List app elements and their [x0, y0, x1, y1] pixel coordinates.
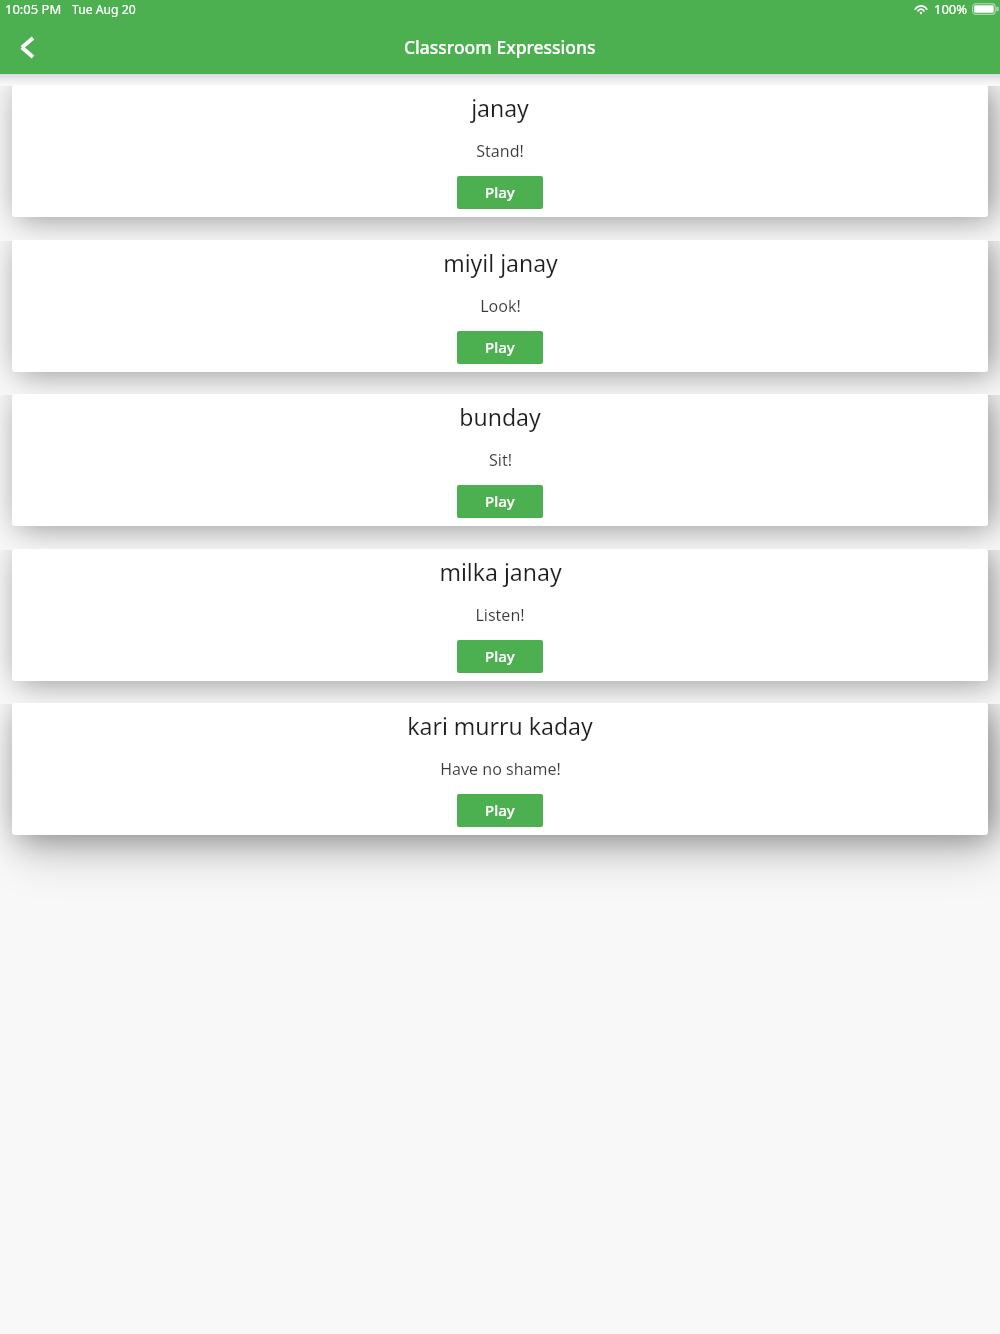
- staticText: Look!: [480, 295, 521, 317]
- button[interactable]: milka janay: [12, 549, 988, 681]
- staticText: Play: [485, 800, 515, 820]
- staticText: Play: [485, 646, 515, 666]
- button[interactable]: janay: [12, 85, 988, 217]
- staticText: bunday: [459, 401, 541, 432]
- button[interactable]: kari murru kaday: [12, 703, 988, 835]
- button[interactable]: bunday: [12, 394, 988, 526]
- staticText: Sit!: [489, 449, 512, 471]
- button[interactable]: Play: [457, 485, 543, 518]
- staticText: Play: [485, 491, 515, 511]
- staticText: Listen!: [475, 604, 525, 626]
- staticText: 10:05 PM: [5, 0, 62, 18]
- staticText: miyil janay: [443, 247, 558, 278]
- staticText: janay: [471, 92, 529, 123]
- button[interactable]: miyil janay: [12, 240, 988, 372]
- button[interactable]: Play: [457, 176, 543, 209]
- staticText: Play: [485, 182, 515, 202]
- staticText: kari murru kaday: [407, 710, 593, 741]
- button[interactable]: Play: [457, 794, 543, 827]
- button[interactable]: Back: [0, 23, 54, 72]
- staticText: Stand!: [476, 140, 524, 162]
- button[interactable]: Play: [457, 331, 543, 364]
- staticText: Classroom Expressions: [404, 35, 596, 59]
- staticText: Tue Aug 20: [72, 1, 136, 18]
- button[interactable]: Play: [457, 640, 543, 673]
- staticText: 100%: [934, 0, 968, 18]
- staticText: milka janay: [439, 556, 562, 587]
- staticText: Play: [485, 337, 515, 357]
- staticText: Have no shame!: [440, 758, 561, 780]
